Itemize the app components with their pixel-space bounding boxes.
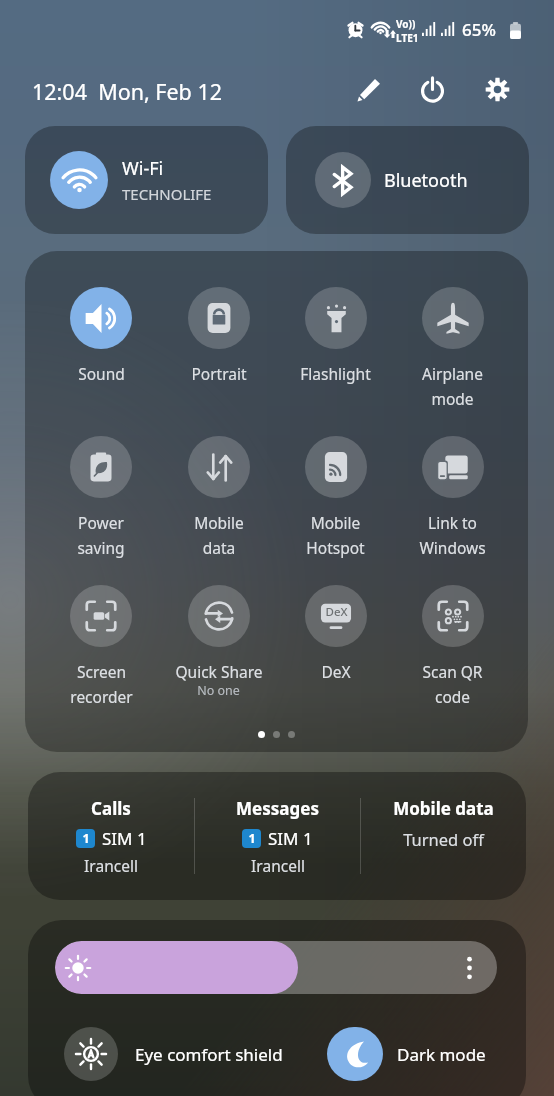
staticText: LTE1: [396, 31, 419, 45]
staticText: DeX: [321, 661, 351, 682]
button[interactable]: Quick Share: [160, 585, 277, 717]
button[interactable]: Mobile Hotspot: [277, 436, 394, 585]
button[interactable]: Dark mode: [327, 1027, 526, 1081]
staticText: Portrait: [191, 363, 247, 384]
button[interactable]: Wi-Fi: [25, 126, 268, 234]
button[interactable]: Portrait: [160, 287, 277, 436]
button[interactable]: Airplane mode: [394, 287, 511, 436]
staticText: Calls: [91, 797, 131, 820]
staticText: Sound: [78, 363, 125, 384]
button[interactable]: [55, 941, 497, 994]
button[interactable]: Sound: [42, 287, 160, 436]
button[interactable]: Screen recorder: [42, 585, 160, 717]
staticText: 65%: [462, 18, 496, 41]
staticText: Eye comfort shield: [135, 1043, 283, 1066]
staticText: Irancell: [251, 855, 305, 876]
staticText: Airplane mode: [422, 363, 483, 410]
staticText: 1: [82, 830, 90, 847]
staticText: Screen recorder: [70, 661, 133, 708]
staticText: Turned off: [403, 828, 484, 850]
staticText: Quick Share: [175, 661, 263, 682]
staticText: Mobile Hotspot: [306, 512, 365, 559]
staticText: 12:04 Mon, Feb 12: [32, 77, 222, 106]
staticText: Power saving: [77, 512, 125, 559]
button[interactable]: Messages: [195, 772, 360, 900]
button[interactable]: Power saving: [42, 436, 160, 585]
staticText: SIM 1: [102, 827, 147, 850]
staticText: Mobile data: [194, 512, 244, 559]
button[interactable]: Edit quick settings: [346, 66, 392, 112]
button[interactable]: Bluetooth: [286, 126, 529, 234]
staticText: Vo)): [396, 17, 416, 31]
staticText: DeX: [325, 604, 348, 620]
staticText: Flashlight: [300, 363, 371, 384]
staticText: SIM 1: [268, 827, 313, 850]
button[interactable]: Mobile data: [160, 436, 277, 585]
button[interactable]: Eye comfort shield: [64, 1027, 328, 1081]
staticText: Scan QR code: [422, 661, 483, 708]
staticText: Bluetooth: [384, 168, 468, 193]
staticText: Link to Windows: [419, 512, 486, 559]
staticText: Messages: [236, 797, 319, 820]
staticText: Mobile data: [393, 797, 494, 820]
button[interactable]: DeX: [277, 585, 394, 717]
button[interactable]: Settings: [474, 66, 520, 112]
staticText: 1: [248, 830, 256, 847]
button[interactable]: Calls: [28, 772, 194, 900]
staticText: No one: [197, 682, 240, 699]
button[interactable]: Link to Windows: [394, 436, 511, 585]
button[interactable]: Power off: [409, 66, 455, 112]
staticText: TECHNOLIFE: [122, 184, 212, 204]
staticText: Irancell: [84, 855, 138, 876]
staticText: Wi-Fi: [122, 156, 164, 181]
button[interactable]: Scan QR code: [394, 585, 511, 717]
staticText: Dark mode: [397, 1043, 486, 1066]
button[interactable]: Mobile data: [361, 772, 526, 900]
button[interactable]: Flashlight: [277, 287, 394, 436]
